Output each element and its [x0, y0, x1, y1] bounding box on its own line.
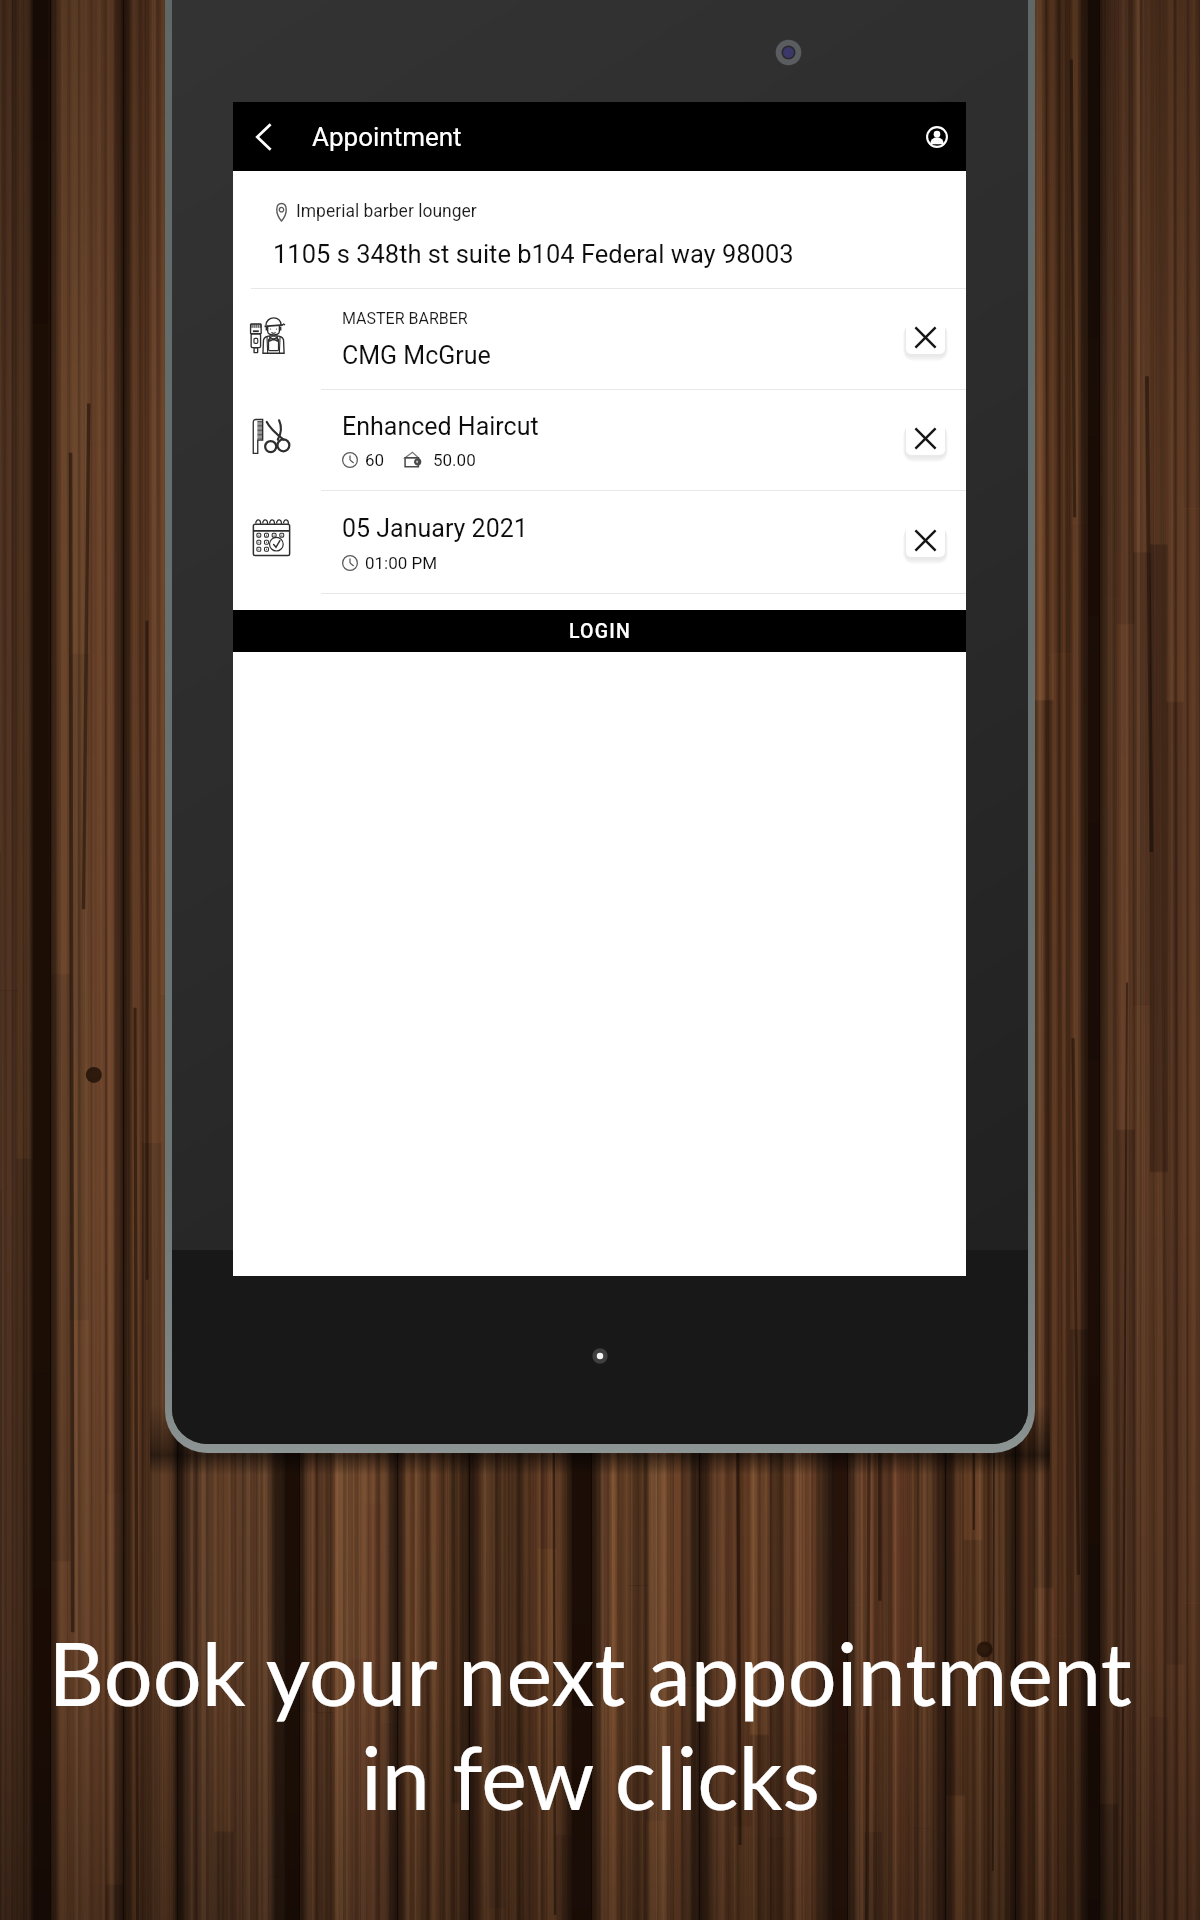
staticText: Enhanced Haircut	[342, 412, 539, 441]
button[interactable]: Account	[908, 102, 966, 171]
button[interactable]: MASTER BARBER	[233, 289, 966, 389]
button[interactable]: Remove	[903, 317, 948, 358]
staticText: 60	[365, 450, 385, 470]
button[interactable]: Remove	[903, 520, 948, 561]
button[interactable]: Remove	[903, 418, 948, 459]
staticText: Book your next appointment	[48, 1621, 1132, 1725]
button[interactable]: LOGIN	[233, 610, 966, 652]
staticText: in few clicks	[361, 1725, 820, 1829]
staticText: 05 January 2021	[342, 514, 528, 543]
button[interactable]: Enhanced Haircut	[233, 390, 966, 490]
staticText: 1105 s 348th st suite b104 Federal way 9…	[273, 239, 794, 269]
staticText: 01:00 PM	[365, 553, 438, 573]
staticText: CMG McGrue	[342, 341, 491, 370]
staticText: LOGIN	[569, 620, 631, 643]
staticText: 50.00	[433, 450, 476, 470]
button[interactable]: 05 January 2021	[233, 491, 966, 593]
staticText: Imperial barber lounger	[296, 201, 477, 222]
button[interactable]: Back	[233, 102, 295, 171]
staticText: MASTER BARBER	[342, 309, 468, 328]
staticText: Appointment	[312, 122, 462, 152]
